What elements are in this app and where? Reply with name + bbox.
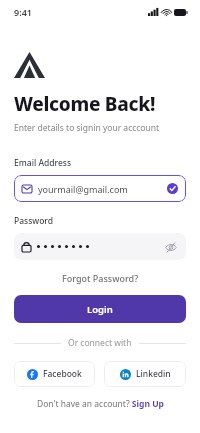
button[interactable]: Don't have an account? Sign Up [33,395,168,413]
staticText: 9:41 [14,6,32,18]
staticText: Welcome Back! [14,91,156,117]
button[interactable]: Facebook [14,361,95,387]
staticText: Login [87,303,113,316]
staticText: Don't have an account? Sign Up [37,398,164,410]
staticText: yourmail@gmail.com [38,183,128,195]
staticText: Enter details to signin your acccount [14,122,160,134]
staticText: Linkedin [136,368,171,380]
button[interactable]: Linkedin [104,361,186,387]
staticText: Or connect with [68,337,132,349]
button[interactable]: yourmail@gmail.com [14,175,186,202]
staticText: Facebook [43,368,82,380]
staticText: Email Address [14,157,72,169]
button[interactable]: Show password [164,240,178,254]
staticText: Forgot Password? [62,272,139,284]
staticText: Password [14,215,54,227]
button[interactable]: Forgot Password? [58,270,143,286]
button[interactable]: Show password [14,233,186,260]
button[interactable]: Login [14,295,186,323]
